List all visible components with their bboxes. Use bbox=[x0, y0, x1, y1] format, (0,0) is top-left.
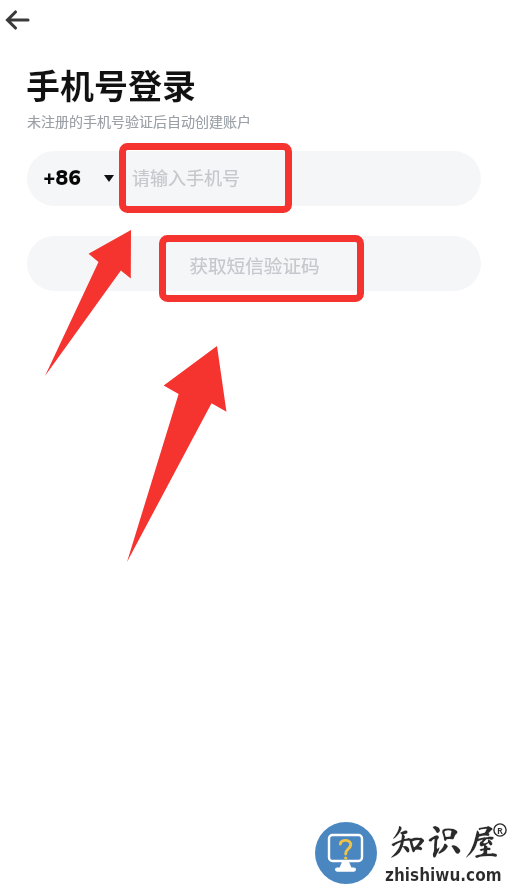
staticText: 请输入手机号 bbox=[132, 164, 240, 190]
staticText: 手机号登录 bbox=[26, 60, 196, 109]
button[interactable]: Back bbox=[0, 0, 46, 46]
staticText: 知识屋 bbox=[389, 822, 500, 859]
button[interactable]: 请输入手机号 bbox=[120, 151, 481, 206]
staticText: 获取短信验证码 bbox=[189, 251, 320, 278]
button[interactable]: 获取短信验证码 bbox=[27, 236, 481, 291]
staticText: +86 bbox=[43, 164, 81, 193]
staticText: zhishiwu.com bbox=[385, 865, 502, 885]
staticText: R bbox=[497, 824, 503, 836]
button[interactable]: +86 bbox=[27, 151, 120, 206]
staticText: 未注册的手机号验证后自动创建账户 bbox=[27, 111, 251, 131]
